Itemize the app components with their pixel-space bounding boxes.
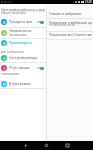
staticText: Настройки рабочего стола	[1, 7, 45, 12]
staticText: В программе	[9, 81, 31, 86]
button[interactable]: Настройки рабочего стола	[0, 6, 93, 12]
staticText: Сжатие и вибрация	[49, 11, 82, 16]
button[interactable]: В программе	[0, 79, 46, 88]
staticText: для сообщества	[1, 50, 24, 54]
staticText: Без описания	[9, 33, 27, 37]
staticText: оповещения	[1, 72, 19, 76]
staticText: Продукты дни	[9, 19, 33, 24]
button[interactable]: Промокоды и скидки на	[0, 38, 46, 47]
button[interactable]: Продукты дни	[0, 17, 46, 26]
button[interactable]: Регистрация	[0, 63, 46, 72]
button[interactable]: Показания все Семейства	[46, 31, 93, 38]
staticText: Промокоды и скидки на	[9, 40, 41, 45]
staticText: Уведомления рабочие	[9, 28, 41, 33]
button[interactable]: Уведомления рабочие	[0, 28, 46, 37]
button[interactable]: Настройки входа	[0, 53, 46, 62]
staticText: Регистрация	[9, 65, 30, 70]
button[interactable]: Показания и вибрации пр	[46, 19, 93, 31]
staticText: Показания все Семейства	[49, 32, 92, 37]
staticText: Настройки входа	[9, 55, 38, 60]
button[interactable]: Сжатие и вибрация	[46, 10, 93, 16]
staticText: Не включено: отсей	[49, 23, 75, 27]
button[interactable]: Back	[22, 142, 29, 149]
button[interactable]: Home	[43, 142, 50, 149]
staticText: общие настройки	[1, 11, 26, 15]
button[interactable]: Recents	[64, 142, 71, 149]
staticText: 13:25	[85, 0, 92, 4]
staticText: Показания и вибрации пр	[49, 20, 92, 25]
